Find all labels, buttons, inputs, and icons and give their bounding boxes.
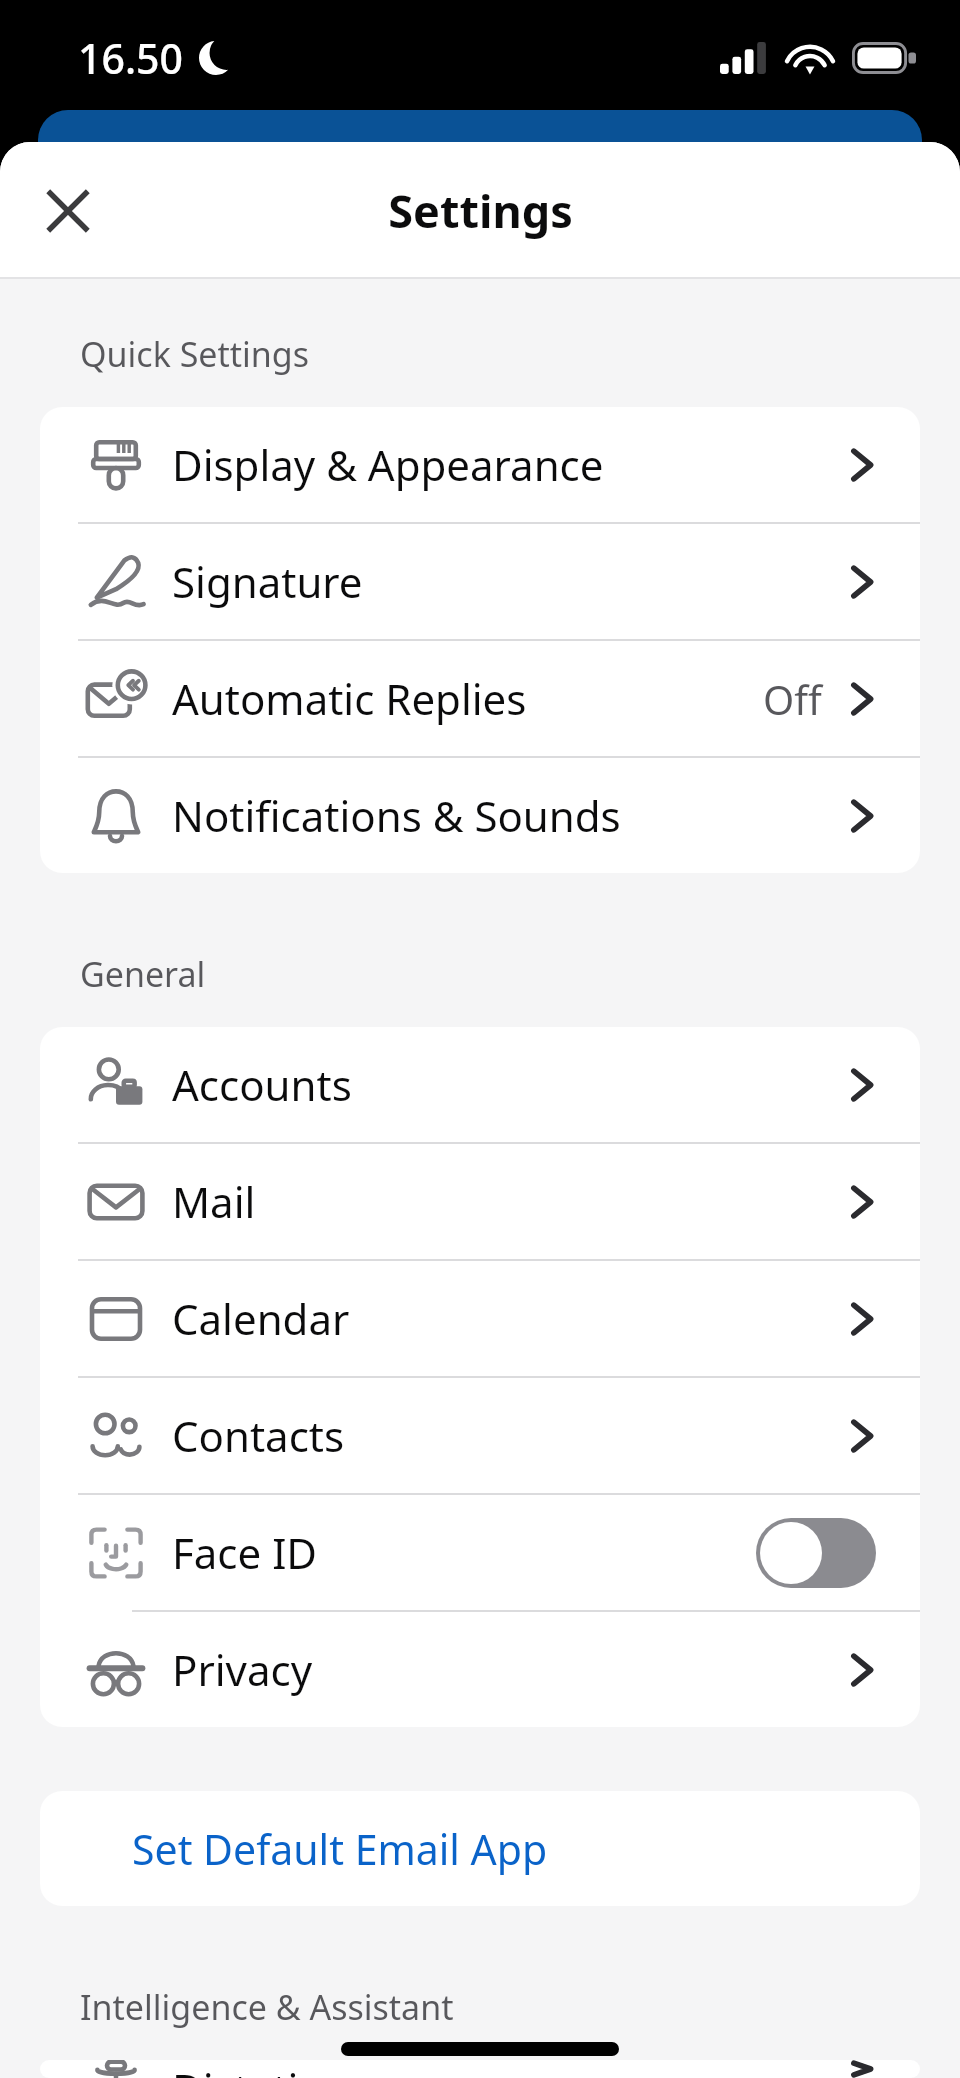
- staticText: Intelligence & Assistant: [80, 1984, 454, 2030]
- button[interactable]: Signature: [40, 524, 920, 639]
- button[interactable]: Contacts: [40, 1378, 920, 1493]
- button[interactable]: Face ID: [40, 1495, 920, 1610]
- staticText: 16.50: [78, 30, 183, 86]
- staticText: Quick Settings: [80, 331, 310, 377]
- button[interactable]: Close: [34, 177, 102, 245]
- button[interactable]: Privacy: [40, 1612, 920, 1727]
- staticText: Privacy: [172, 1641, 313, 1698]
- button[interactable]: Automatic Replies: [40, 641, 920, 756]
- staticText: Notifications & Sounds: [172, 787, 621, 844]
- staticText: General: [80, 951, 206, 997]
- staticText: Set Default Email App: [132, 1821, 548, 1877]
- button[interactable]: Set Default Email App: [40, 1791, 920, 1906]
- staticText: Display & Appearance: [172, 436, 604, 493]
- button[interactable]: Accounts: [40, 1027, 920, 1142]
- staticText: Dictation: [172, 2060, 350, 2078]
- staticText: Calendar: [172, 1290, 350, 1347]
- staticText: Settings: [388, 180, 573, 241]
- staticText: Signature: [172, 553, 363, 610]
- button[interactable]: Notifications & Sounds: [40, 758, 920, 873]
- staticText: Face ID: [172, 1524, 318, 1581]
- button[interactable]: Calendar: [40, 1261, 920, 1376]
- button[interactable]: Display & Appearance: [40, 407, 920, 522]
- staticText: Automatic Replies: [172, 670, 527, 727]
- staticText: Accounts: [172, 1056, 352, 1113]
- button[interactable]: Mail: [40, 1144, 920, 1259]
- staticText: Mail: [172, 1173, 256, 1230]
- button[interactable]: Dictation: [40, 2060, 920, 2078]
- button[interactable]: Face ID: [756, 1518, 876, 1588]
- staticText: Contacts: [172, 1407, 345, 1464]
- staticText: Off: [763, 672, 822, 726]
